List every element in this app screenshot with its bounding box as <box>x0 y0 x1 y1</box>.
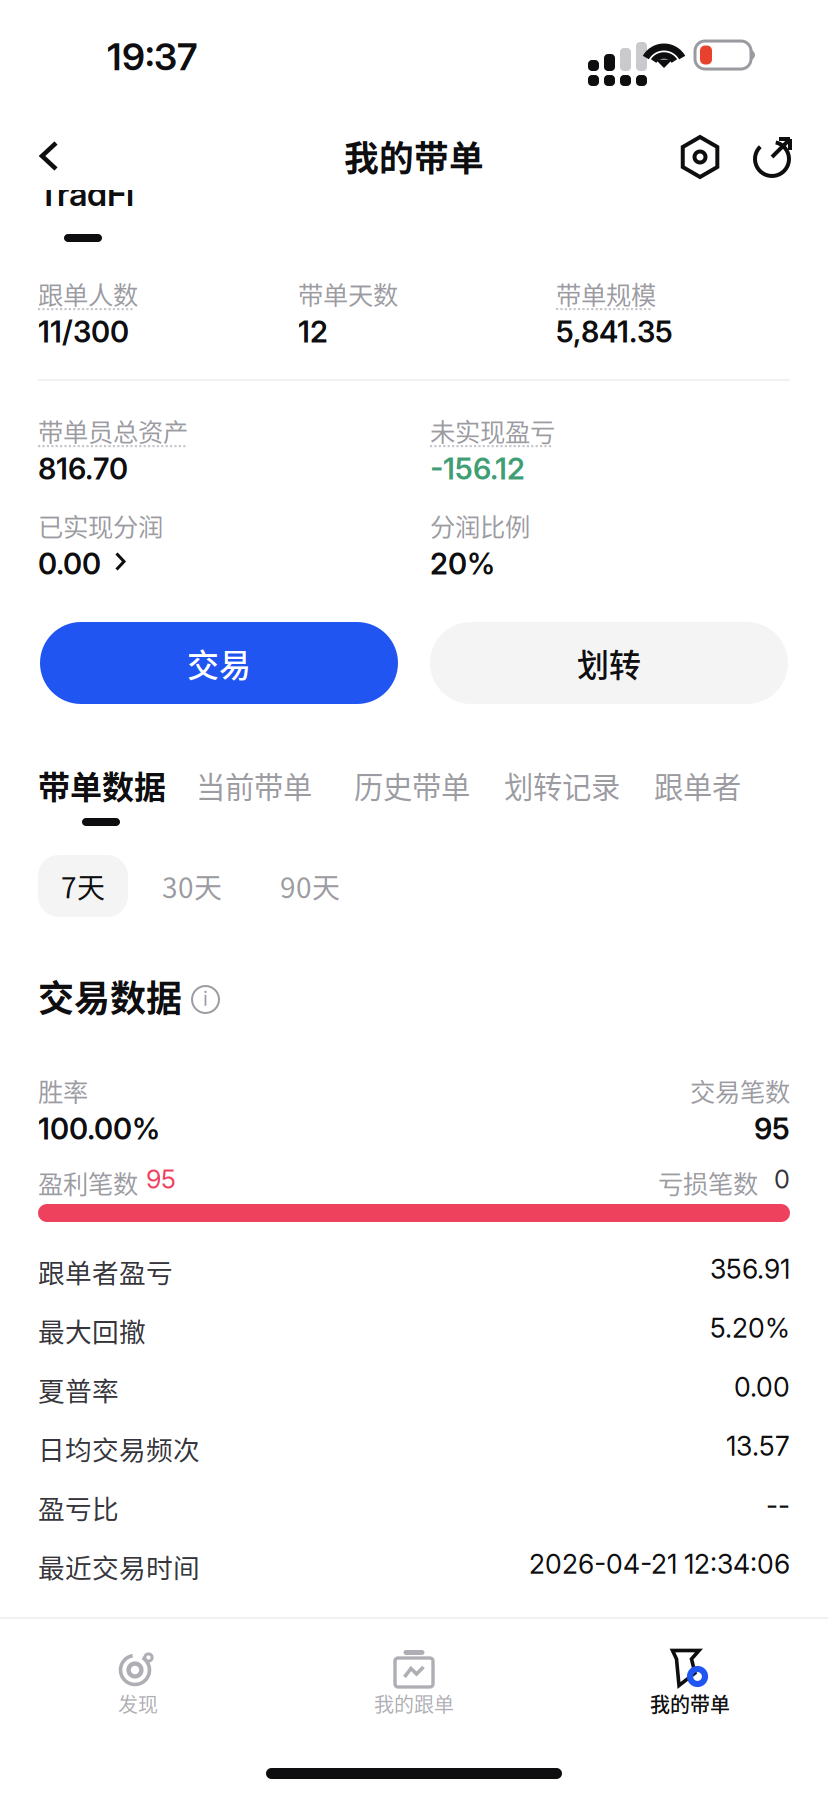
staticText: 当前带单 <box>196 764 312 806</box>
staticText: -- <box>766 1489 790 1521</box>
staticText: 356.91 <box>710 1253 790 1285</box>
staticText: 2026-04-21 12:34:06 <box>529 1548 790 1580</box>
staticText: 跟单者 <box>654 764 741 806</box>
staticText: 交易笔数 <box>690 1072 790 1109</box>
button[interactable]: 划转记录 <box>504 764 620 806</box>
staticText: 盈亏比 <box>38 1488 119 1527</box>
staticText: 跟单人数 <box>38 275 138 312</box>
staticText: 20% <box>430 546 495 581</box>
staticText: 5,841.35 <box>556 314 673 349</box>
staticText: 我的带单 <box>650 1689 730 1718</box>
button[interactable]: Back <box>14 121 86 193</box>
staticText: 带单数据 <box>38 762 166 808</box>
button[interactable]: 我的带单 <box>618 1648 762 1734</box>
staticText: 已实现分润 <box>38 507 163 544</box>
staticText: 日均交易频次 <box>38 1429 200 1468</box>
staticText: 0.00 <box>38 546 101 581</box>
staticText: 95 <box>146 1164 176 1195</box>
staticText: 13.57 <box>726 1430 790 1462</box>
button[interactable]: 划转 <box>430 622 788 704</box>
staticText: 我的跟单 <box>374 1689 454 1718</box>
staticText: 7天 <box>61 866 105 906</box>
staticText: 发现 <box>118 1689 158 1718</box>
button[interactable]: 30天 <box>142 855 242 917</box>
button[interactable]: 带单数据 <box>38 762 166 808</box>
staticText: 带单员总资产 <box>38 412 188 449</box>
staticText: 带单天数 <box>298 275 398 312</box>
staticText: 盈利笔数 <box>38 1164 138 1201</box>
button[interactable]: 7天 <box>38 855 128 917</box>
button[interactable]: 历史带单 <box>354 764 470 806</box>
staticText: 0.00 <box>734 1371 790 1403</box>
staticText: 我的带单 <box>344 131 484 181</box>
staticText: 30天 <box>162 866 222 906</box>
staticText: 跟单者盈亏 <box>38 1252 173 1291</box>
staticText: 最近交易时间 <box>38 1547 200 1586</box>
staticText: 胜率 <box>38 1072 88 1109</box>
staticText: 12 <box>298 314 328 349</box>
staticText: 划转记录 <box>504 764 620 806</box>
staticText: 最大回撤 <box>38 1311 146 1350</box>
staticText: 816.70 <box>38 451 128 486</box>
staticText: 0 <box>774 1164 790 1195</box>
button[interactable]: 跟单者 <box>654 764 741 806</box>
staticText: 90天 <box>280 866 340 906</box>
staticText: 95 <box>754 1111 790 1146</box>
button[interactable]: 我的跟单 <box>342 1648 486 1734</box>
button[interactable]: 交易 <box>40 622 398 704</box>
staticText: 未实现盈亏 <box>430 412 555 449</box>
staticText: 交易 <box>187 640 251 686</box>
button[interactable]: Share <box>738 121 810 193</box>
button[interactable]: Settings <box>664 121 736 193</box>
staticText: 划转 <box>577 640 641 686</box>
staticText: 19:37 <box>107 34 197 79</box>
staticText: i <box>203 986 208 1011</box>
staticText: 交易数据 <box>38 970 182 1022</box>
staticText: 11/300 <box>38 314 129 349</box>
staticText: 分润比例 <box>430 507 530 544</box>
button[interactable]: 90天 <box>260 855 360 917</box>
staticText: 历史带单 <box>354 764 470 806</box>
staticText: 100.00% <box>38 1111 160 1146</box>
staticText: 带单规模 <box>556 275 656 312</box>
staticText: TradFi <box>38 174 134 214</box>
staticText: 夏普率 <box>38 1370 119 1409</box>
button[interactable]: 当前带单 <box>196 764 312 806</box>
staticText: -156.12 <box>430 451 525 486</box>
staticText: 亏损笔数 <box>658 1164 758 1201</box>
staticText: 5.20% <box>710 1312 790 1344</box>
button[interactable]: 发现 <box>66 1648 210 1734</box>
